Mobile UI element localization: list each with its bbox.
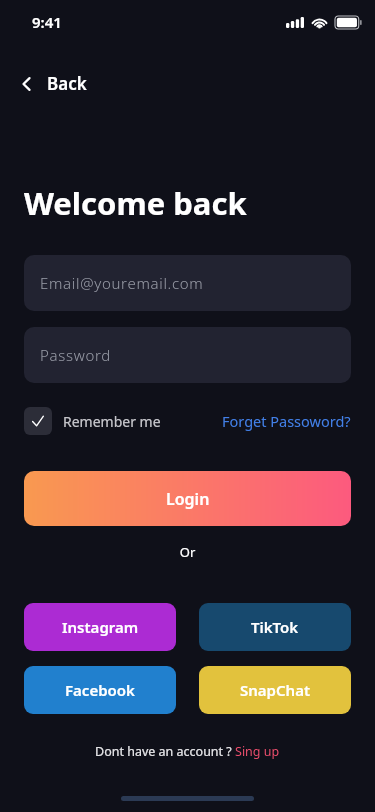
button[interactable]: Back: [20, 72, 87, 95]
button[interactable]: Forget Passoword?: [222, 411, 351, 431]
staticText: Password: [40, 345, 111, 365]
button[interactable]: Login: [24, 471, 351, 526]
staticText: Facebook: [65, 680, 135, 700]
button[interactable]: TikTok: [199, 603, 351, 651]
staticText: Email@youremail.com: [40, 273, 204, 293]
button[interactable]: Email@youremail.com: [24, 255, 351, 311]
staticText: 9:41: [32, 12, 62, 32]
button[interactable]: Facebook: [24, 666, 176, 714]
button[interactable]: Password: [24, 327, 351, 383]
staticText: Remember me: [63, 412, 161, 431]
button[interactable]: SnapChat: [199, 666, 351, 714]
staticText: TikTok: [251, 617, 299, 637]
button[interactable]: Instagram: [24, 603, 176, 651]
staticText: Instagram: [62, 617, 139, 637]
button[interactable]: Dont have an account ? Sing up: [0, 743, 375, 760]
staticText: Back: [47, 72, 87, 95]
staticText: Dont have an account ? Sing up: [95, 743, 280, 760]
staticText: Login: [166, 488, 210, 510]
staticText: Or: [0, 543, 375, 561]
staticText: Welcome back: [24, 182, 247, 224]
button[interactable]: [24, 407, 52, 435]
staticText: SnapChat: [240, 680, 310, 700]
